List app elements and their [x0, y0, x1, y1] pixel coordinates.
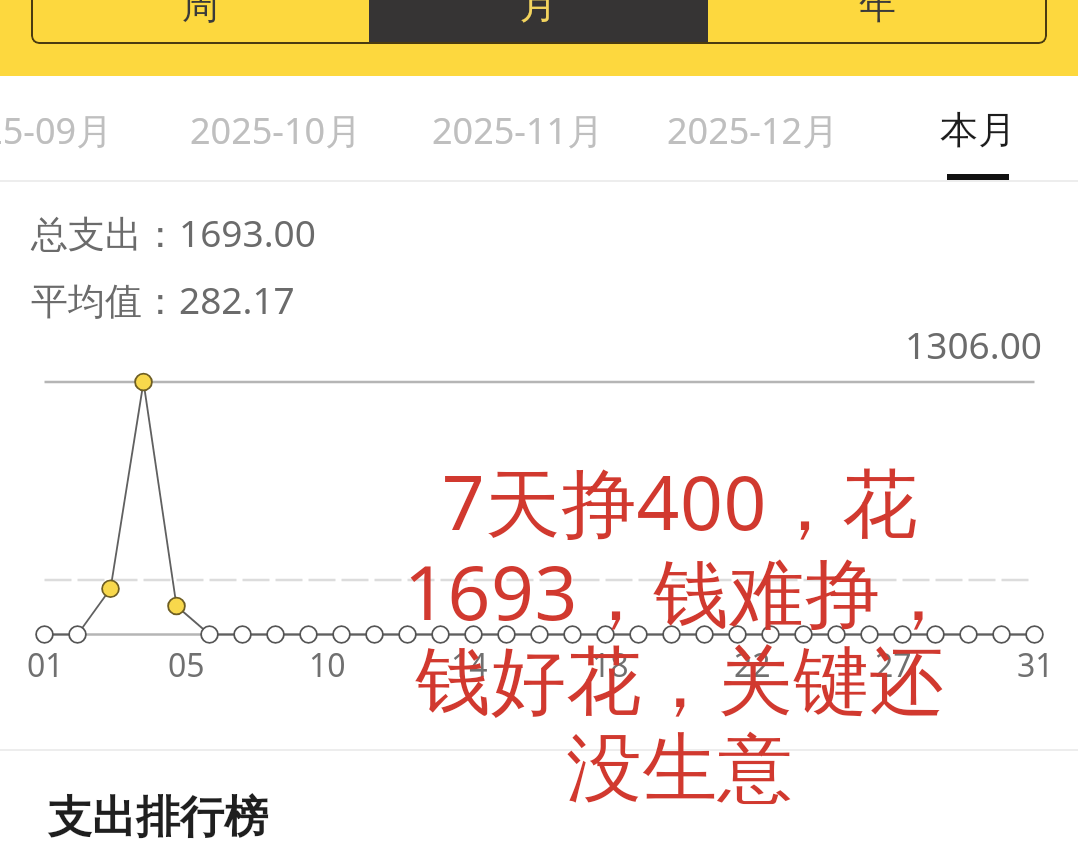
button[interactable]: 2025-11月: [410, 84, 626, 169]
staticText: 总支出：1693.00: [31, 207, 316, 258]
button[interactable]: 年: [708, 0, 1047, 44]
staticText: 2025-11月: [432, 106, 604, 155]
staticText: 2025-09月: [0, 106, 113, 155]
staticText: 01: [27, 643, 64, 687]
staticText: 7天挣400，花 1693，钱难挣， 钱好花，关键还 没生意: [400, 450, 960, 816]
staticText: 平均值：282.17: [31, 274, 295, 325]
button[interactable]: 本月: [918, 84, 1038, 195]
staticText: 1306.00: [0, 319, 1042, 369]
staticText: 本月: [940, 106, 1016, 154]
staticText: 27: [875, 643, 912, 687]
staticText: 月: [520, 0, 557, 29]
staticText: 2025-10月: [190, 106, 362, 155]
button[interactable]: 月: [369, 0, 708, 44]
button[interactable]: 支出排行榜: [0, 762, 1078, 864]
button[interactable]: 2025-12月: [645, 84, 861, 169]
staticText: 10: [309, 643, 346, 687]
staticText: 14: [451, 643, 488, 687]
staticText: 周: [182, 0, 219, 29]
staticText: 22: [734, 643, 771, 687]
staticText: 05: [168, 643, 205, 687]
button[interactable]: 2025-10月: [168, 84, 384, 169]
staticText: 31: [1017, 643, 1054, 687]
button[interactable]: 周: [31, 0, 369, 44]
staticText: 年: [859, 0, 896, 29]
staticText: 支出排行榜: [48, 790, 268, 845]
staticText: 2025-12月: [667, 106, 839, 155]
button[interactable]: 2025-09月: [0, 84, 135, 169]
staticText: 18: [592, 643, 629, 687]
